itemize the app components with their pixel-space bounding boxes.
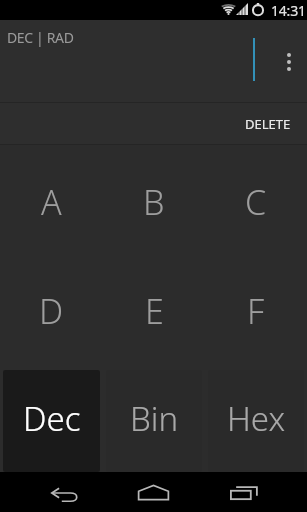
button[interactable]: Back	[26, 472, 102, 512]
staticText: Bin	[130, 396, 179, 441]
button[interactable]: DELETE	[229, 103, 307, 145]
staticText: Dec	[23, 396, 81, 441]
staticText: C	[245, 179, 267, 225]
button[interactable]: Expression	[0, 35, 255, 87]
button[interactable]: Dec	[3, 370, 100, 472]
button[interactable]: Recent apps	[206, 472, 282, 512]
staticText: B	[143, 179, 165, 225]
button[interactable]: F	[205, 256, 307, 365]
button[interactable]: Hex	[208, 370, 304, 472]
staticText: D	[39, 288, 64, 334]
button[interactable]: B	[103, 147, 205, 256]
staticText: F	[247, 288, 265, 334]
button[interactable]: Bin	[106, 370, 202, 472]
button[interactable]: A	[0, 147, 103, 256]
staticText: DELETE	[245, 115, 291, 133]
button[interactable]: E	[103, 256, 205, 365]
staticText: A	[41, 179, 62, 225]
staticText: DEC | RAD	[7, 28, 74, 47]
staticText: 14:31	[271, 1, 306, 20]
button[interactable]: Home	[116, 472, 192, 512]
staticText: Hex	[227, 396, 286, 441]
button[interactable]: D	[0, 256, 103, 365]
staticText: E	[145, 288, 164, 334]
button[interactable]: C	[205, 147, 307, 256]
button[interactable]: More options	[271, 20, 307, 103]
